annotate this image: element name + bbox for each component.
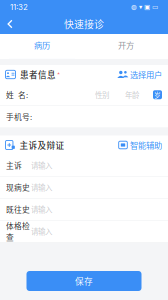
button[interactable]: 选择用户 — [116, 66, 163, 82]
staticText: * — [56, 70, 60, 79]
staticText: 请输入 — [31, 226, 52, 237]
staticText: ◍ ▾ ▣ ▭ — [131, 3, 158, 11]
staticText: 姓 名: — [6, 89, 28, 100]
staticText: 主诉及辩证 — [19, 139, 64, 151]
button[interactable]: 开方 — [84, 34, 168, 59]
button[interactable]: Back — [0, 14, 20, 34]
staticText: 手机号: — [6, 111, 32, 122]
button[interactable]: 保存 — [26, 271, 141, 291]
staticText: 请输入 — [31, 160, 52, 171]
staticText: 智能辅助 — [130, 139, 162, 151]
staticText: 年龄 — [125, 89, 139, 100]
staticText: 保存 — [75, 275, 93, 287]
staticText: 性别 — [95, 89, 109, 100]
staticText: 主诉 — [6, 160, 22, 171]
staticText: 快速接诊 — [64, 17, 104, 31]
staticText: 开方 — [118, 39, 134, 51]
staticText: 体格检查 — [6, 220, 30, 242]
staticText: 现病史 — [6, 182, 30, 193]
staticText: 既往史 — [6, 204, 30, 215]
staticText: 请输入 — [31, 182, 52, 193]
staticText — [15, 139, 19, 151]
button[interactable]: 智能辅助 — [117, 137, 163, 153]
staticText: 11:32 — [10, 2, 28, 12]
staticText: 患者信息 — [20, 68, 56, 81]
staticText: 病历 — [34, 39, 50, 51]
staticText: 请输入 — [31, 204, 52, 215]
button[interactable]: 病历 — [0, 34, 84, 59]
staticText: 岁 — [154, 90, 161, 100]
staticText: 选择用户 — [130, 68, 162, 80]
